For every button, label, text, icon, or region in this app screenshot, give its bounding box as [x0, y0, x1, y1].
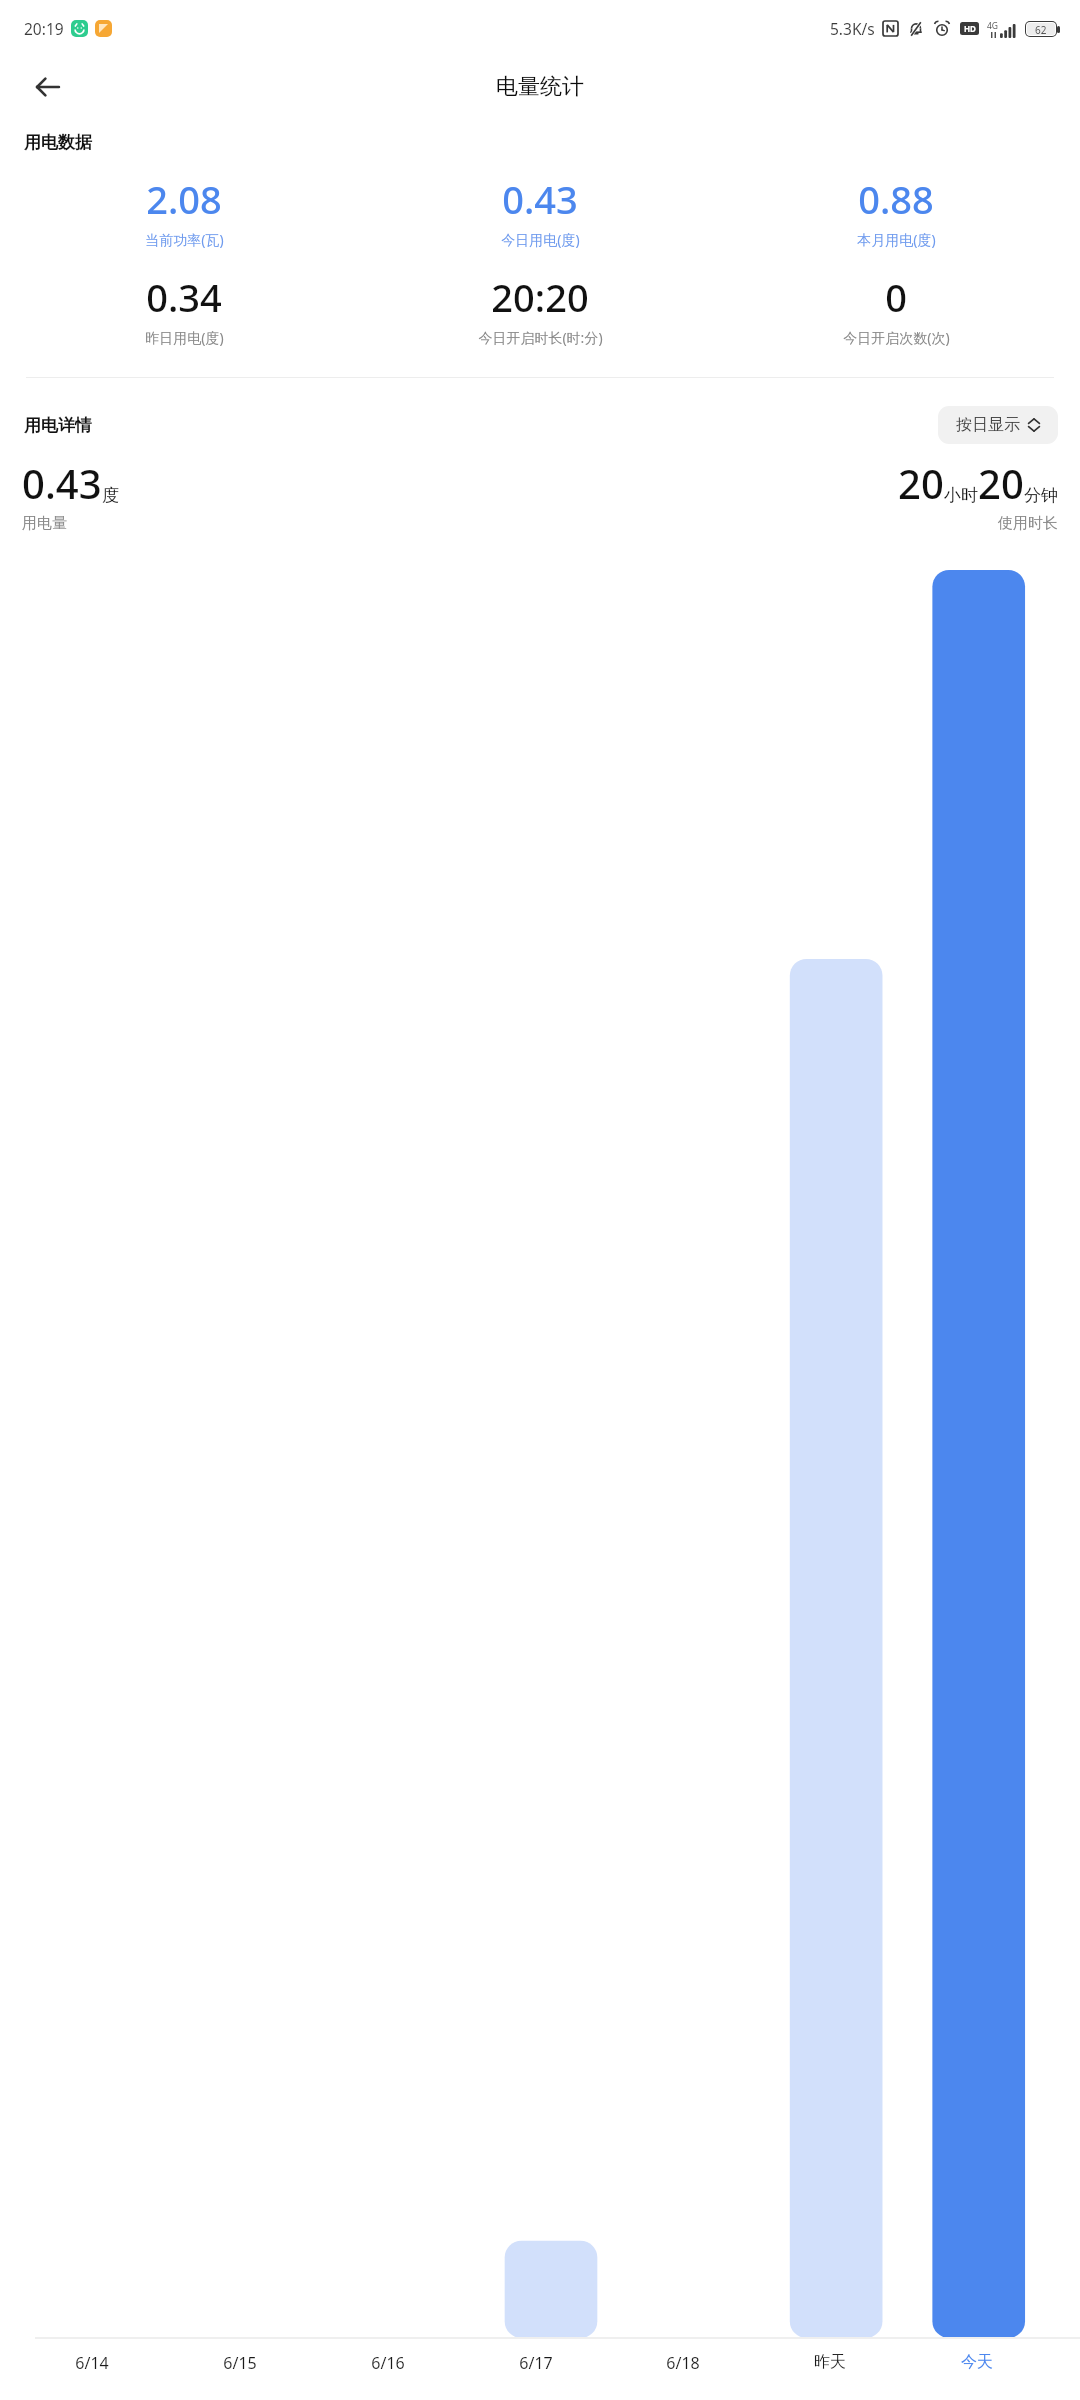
- staticText: 今日开启时长(时:分): [478, 328, 603, 347]
- staticText: 今天: [961, 2352, 993, 2372]
- staticText: 6/18: [666, 2352, 700, 2374]
- staticText: 20:19: [24, 18, 64, 39]
- staticText: 20: [978, 456, 1024, 510]
- staticText: 今日用电(度): [501, 230, 580, 249]
- staticText: 度: [102, 485, 119, 506]
- staticText: 6/15: [223, 2352, 257, 2374]
- staticText: HD: [964, 23, 976, 34]
- staticText: 今日开启次数(次): [843, 328, 950, 347]
- button[interactable]: 按日显示: [938, 406, 1058, 444]
- staticText: 2.08: [146, 173, 222, 225]
- staticText: 本月用电(度): [857, 230, 936, 249]
- staticText: 用电量: [22, 514, 67, 533]
- staticText: 20: [898, 456, 944, 510]
- staticText: 用电数据: [24, 132, 92, 153]
- staticText: 小时: [944, 485, 978, 506]
- staticText: 20:20: [491, 271, 589, 323]
- staticText: 分钟: [1024, 485, 1058, 506]
- staticText: 6/14: [75, 2352, 109, 2374]
- staticText: 昨天: [814, 2352, 846, 2372]
- staticText: 使用时长: [998, 514, 1058, 533]
- staticText: 当前功率(瓦): [145, 230, 224, 249]
- staticText: 0.34: [146, 271, 222, 323]
- staticText: 4G: [987, 20, 999, 32]
- staticText: 0.43: [22, 456, 102, 510]
- staticText: 5.3K/s: [830, 18, 875, 39]
- staticText: 6/16: [371, 2352, 405, 2374]
- staticText: 6/17: [519, 2352, 553, 2374]
- staticText: 0: [885, 271, 907, 323]
- staticText: 0.88: [858, 173, 934, 225]
- staticText: 按日显示: [956, 415, 1020, 435]
- staticText: 62: [1035, 23, 1047, 35]
- staticText: 0.43: [502, 173, 578, 225]
- staticText: 昨日用电(度): [145, 328, 224, 347]
- button[interactable]: 返回: [24, 63, 72, 111]
- staticText: 电量统计: [496, 73, 584, 101]
- staticText: 用电详情: [24, 415, 92, 436]
